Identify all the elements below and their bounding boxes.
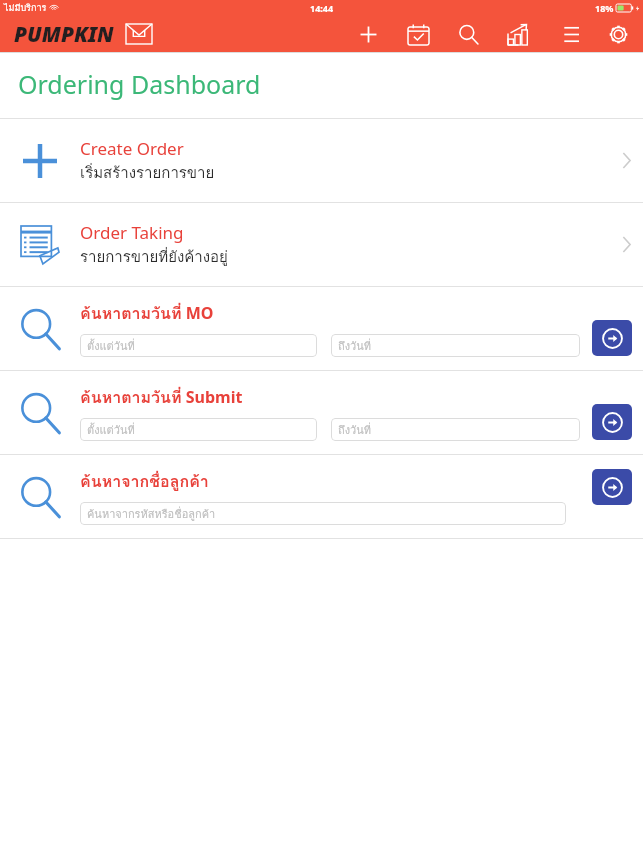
- staticText: ไม่มีบริการ: [4, 1, 47, 15]
- button[interactable]: Tasks: [401, 17, 435, 51]
- staticText: ถึงวันที่: [338, 337, 371, 354]
- staticText: 18%: [595, 2, 614, 14]
- button[interactable]: Search: [592, 320, 632, 356]
- staticText: PUMPKIN: [14, 20, 114, 49]
- button[interactable]: Settings: [601, 17, 635, 51]
- staticText: ตั้งแต่วันที่: [87, 421, 135, 438]
- button[interactable]: Add: [351, 17, 385, 51]
- staticText: Ordering Dashboard: [18, 67, 261, 101]
- button[interactable]: List: [551, 17, 585, 51]
- staticText: Create Order: [80, 137, 184, 160]
- button[interactable]: ค้นหาจากรหัสหรือชื่อลูกค้า: [80, 502, 566, 525]
- button[interactable]: ถึงวันที่: [331, 418, 580, 441]
- staticText: ถึงวันที่: [338, 421, 371, 438]
- button[interactable]: Search: [592, 469, 632, 505]
- staticText: ค้นหาตามวันที่ Submit: [80, 385, 243, 410]
- button[interactable]: ตั้งแต่วันที่: [80, 334, 317, 357]
- button[interactable]: Create Order: [0, 119, 643, 202]
- staticText: รายการขายที่ยังค้างอยู่: [80, 245, 228, 269]
- staticText: ตั้งแต่วันที่: [87, 337, 135, 354]
- button[interactable]: Messages: [124, 19, 154, 49]
- staticText: Order Taking: [80, 221, 184, 244]
- button[interactable]: Search: [451, 17, 485, 51]
- staticText: 14:44: [310, 2, 334, 14]
- button[interactable]: Search: [592, 404, 632, 440]
- button[interactable]: ถึงวันที่: [331, 334, 580, 357]
- button[interactable]: Order Taking: [0, 203, 643, 286]
- button[interactable]: ตั้งแต่วันที่: [80, 418, 317, 441]
- button[interactable]: Reports: [501, 17, 535, 51]
- staticText: ค้นหาตามวันที่ MO: [80, 301, 214, 326]
- staticText: เริ่มสร้างรายการขาย: [80, 161, 215, 185]
- staticText: ค้นหาจากชื่อลูกค้า: [80, 469, 209, 494]
- staticText: ค้นหาจากรหัสหรือชื่อลูกค้า: [87, 505, 216, 522]
